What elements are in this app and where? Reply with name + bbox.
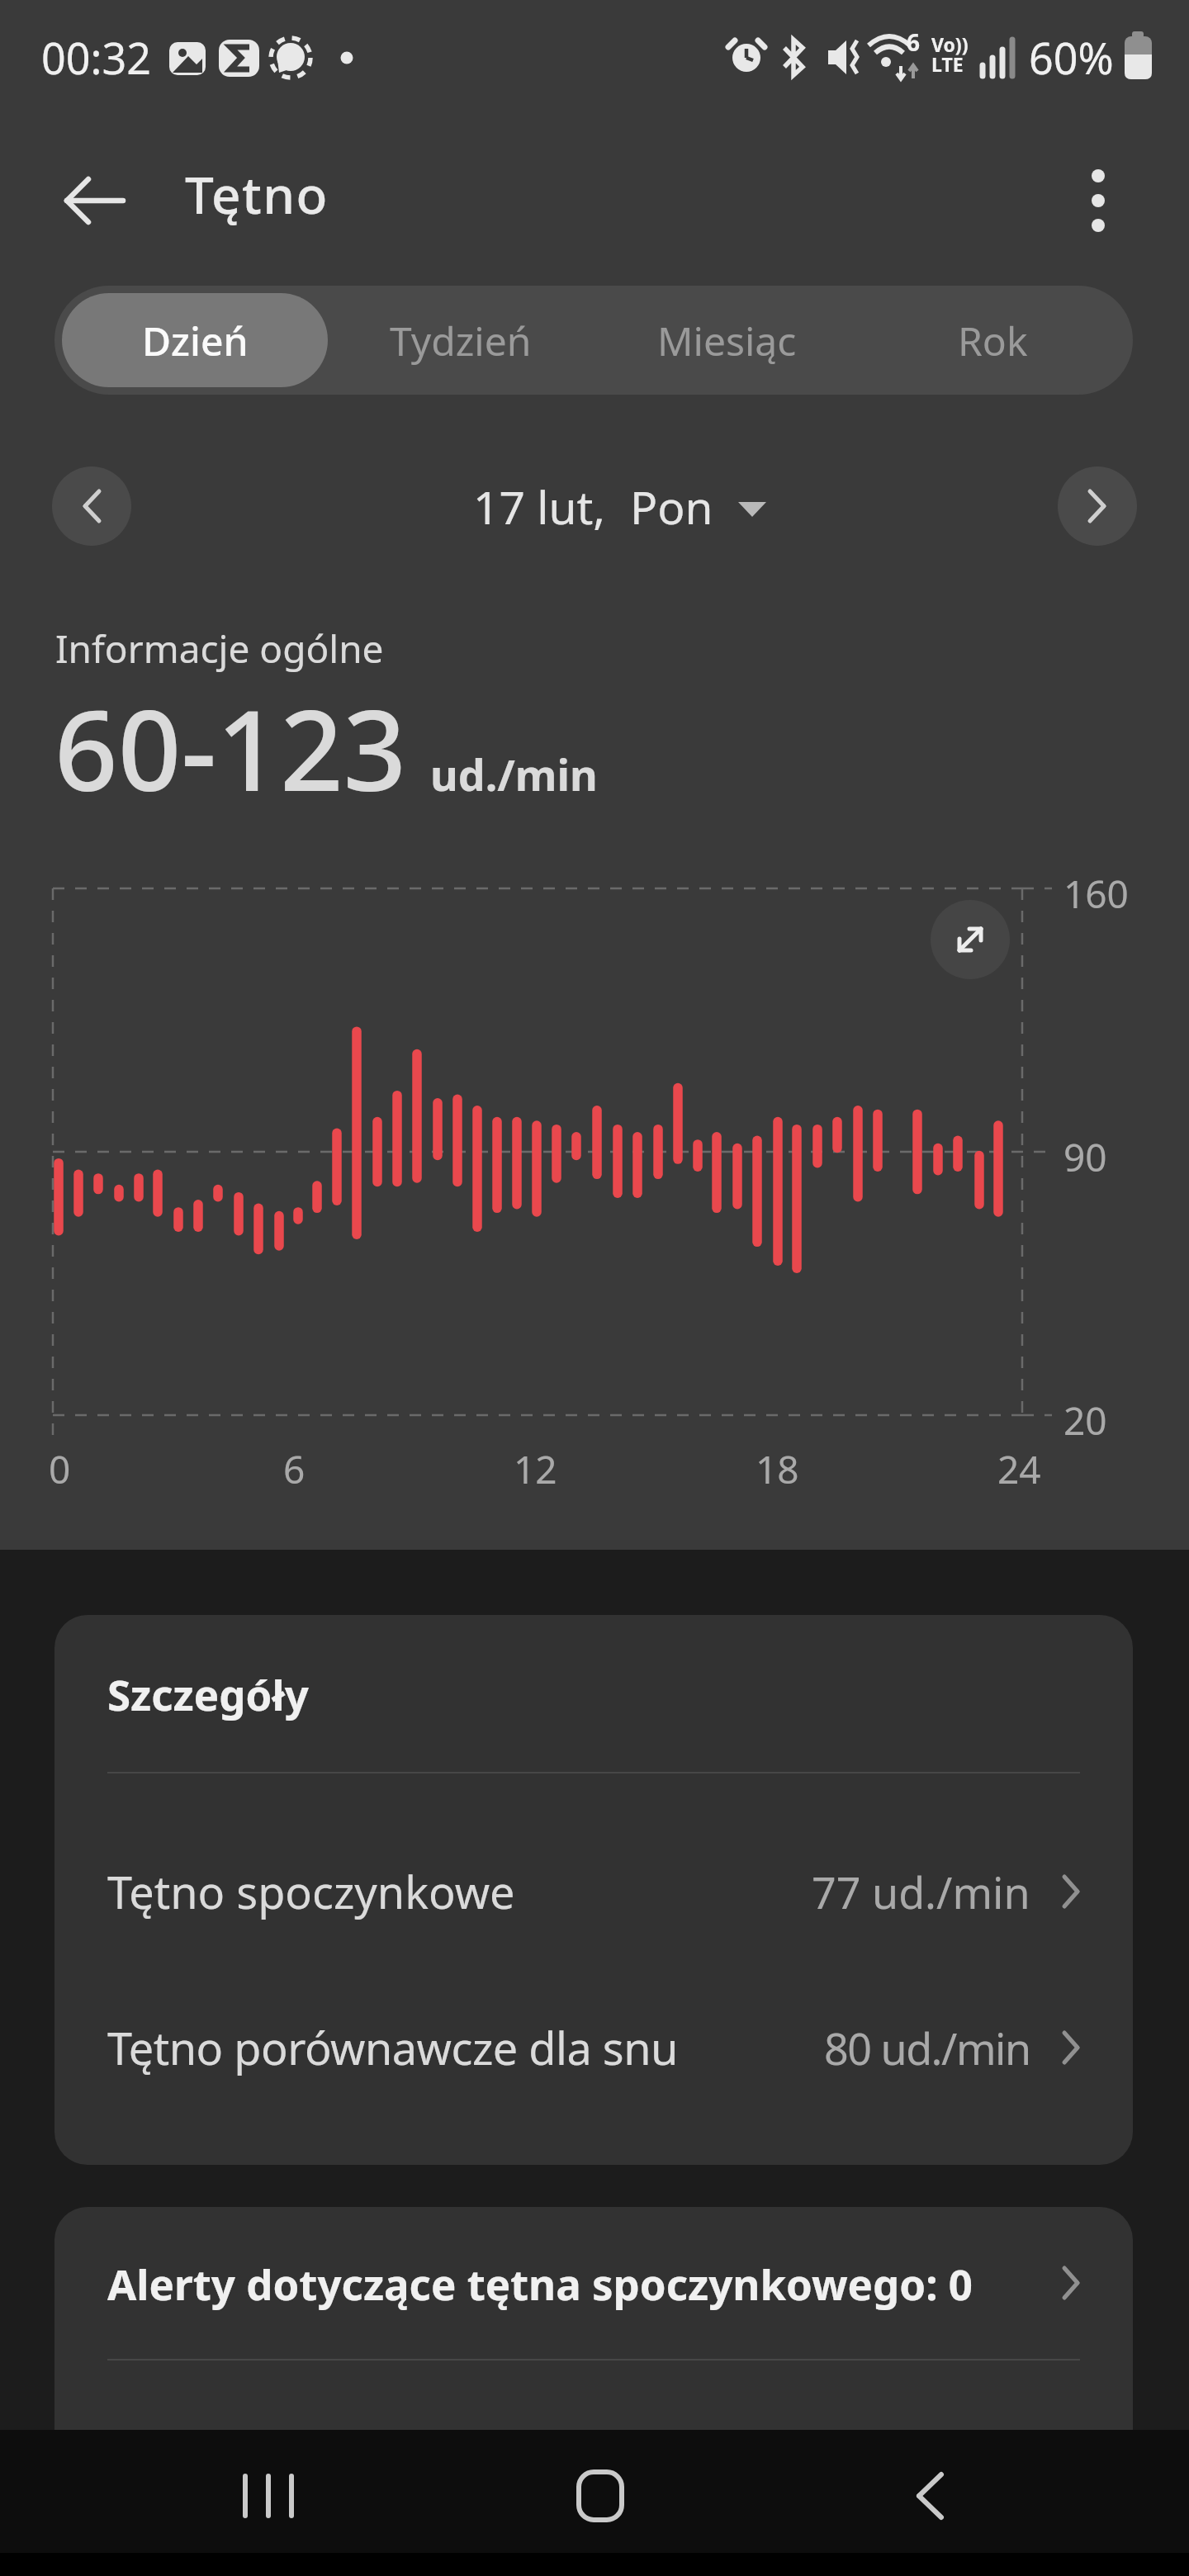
staticText: 77 ud./min xyxy=(812,1863,1030,1921)
staticText: 6 xyxy=(907,26,921,58)
staticText: Miesiąc xyxy=(657,314,797,367)
staticText: LTE xyxy=(931,51,964,77)
staticText: 0 xyxy=(49,1443,71,1495)
button[interactable]: Tętno spoczynkowe xyxy=(54,1815,1133,1968)
button[interactable]: Alerty dotyczące tętna spoczynkowego: 0 xyxy=(54,2207,1133,2359)
staticText: 17 lut, xyxy=(473,476,605,537)
button[interactable]: Miesiąc xyxy=(594,293,860,387)
button[interactable] xyxy=(46,153,142,249)
staticText: 90 xyxy=(1063,1131,1107,1183)
staticText: 160 xyxy=(1063,868,1129,920)
staticText: 60-123 xyxy=(54,673,407,824)
button[interactable]: Tydzień xyxy=(328,293,594,387)
button[interactable] xyxy=(1058,466,1137,546)
staticText: 20 xyxy=(1063,1395,1107,1447)
staticText: ud./min xyxy=(430,745,598,803)
staticText: Tętno xyxy=(185,159,329,229)
staticText: Pon xyxy=(630,476,713,537)
staticText: Tętno porównawcze dla snu xyxy=(107,2017,678,2078)
staticText: 24 xyxy=(997,1443,1041,1495)
staticText: Szczegóły xyxy=(107,1665,309,1722)
staticText: Alerty dotyczące tętna spoczynkowego: 0 xyxy=(107,2255,973,2312)
button[interactable] xyxy=(52,466,131,546)
staticText: 6 xyxy=(283,1443,306,1495)
button[interactable] xyxy=(855,2430,1004,2562)
button[interactable] xyxy=(526,2430,675,2562)
button[interactable] xyxy=(194,2430,343,2562)
button[interactable] xyxy=(1050,153,1146,249)
staticText: 80 ud./min xyxy=(824,2019,1030,2077)
button[interactable]: Rok xyxy=(860,293,1125,387)
staticText: Informacje ogólne xyxy=(55,623,384,675)
button[interactable]: Tętno porównawcze dla snu xyxy=(54,1968,1133,2127)
staticText: 18 xyxy=(756,1443,799,1495)
button[interactable] xyxy=(931,900,1010,979)
staticText: Vo)) xyxy=(931,31,969,57)
staticText: 60% xyxy=(1029,28,1114,87)
staticText: Rok xyxy=(958,314,1028,367)
staticText: Tętno spoczynkowe xyxy=(107,1861,515,1922)
staticText: Tydzień xyxy=(390,314,532,367)
button[interactable]: 17 lut, xyxy=(376,466,863,546)
button[interactable]: Dzień xyxy=(62,293,328,387)
staticText: 12 xyxy=(514,1443,557,1495)
staticText: 00:32 xyxy=(41,28,151,87)
staticText: Dzień xyxy=(142,314,249,367)
